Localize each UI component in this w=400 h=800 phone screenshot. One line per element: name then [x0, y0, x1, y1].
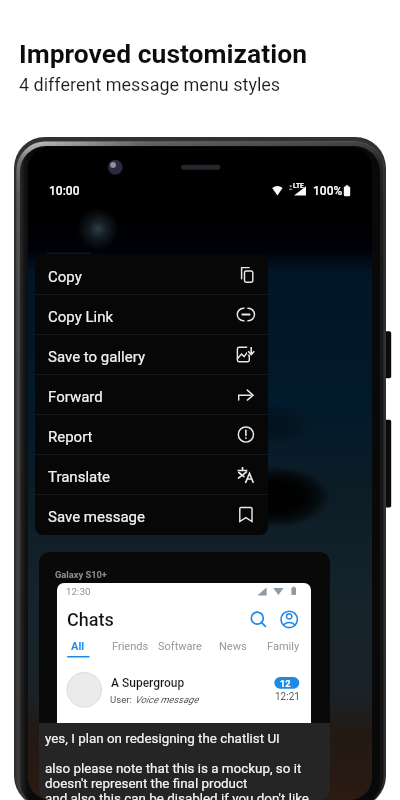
staticText: and also this can be disabled if you don… — [45, 791, 309, 800]
button[interactable]: Report — [35, 414, 268, 454]
button[interactable]: Save to gallery — [35, 334, 268, 374]
staticText: News — [219, 640, 247, 653]
staticText: 4 different message menu styles — [19, 74, 281, 95]
button[interactable]: Copy — [35, 254, 268, 294]
staticText: doesn't represent the final product — [45, 776, 248, 792]
staticText: Translate — [48, 468, 111, 486]
staticText: 12:30 — [66, 586, 91, 597]
staticText: Improved customization — [19, 38, 308, 69]
staticText: Software — [158, 640, 202, 653]
staticText: also please note that this is a mockup, … — [45, 761, 302, 777]
staticText: Family — [267, 640, 300, 653]
staticText: Save message — [48, 508, 145, 526]
staticText: Report — [48, 428, 93, 446]
staticText: 100% — [313, 184, 343, 198]
staticText: Friends — [112, 640, 149, 653]
staticText: All — [71, 640, 85, 653]
button[interactable]: Copy Link — [35, 294, 268, 334]
staticText: Save to gallery — [48, 348, 145, 366]
button[interactable]: Galaxy S10+ — [39, 552, 330, 800]
staticText: Chats — [67, 609, 114, 630]
staticText: 10:00 — [49, 184, 80, 198]
button[interactable]: Forward — [35, 374, 268, 414]
staticText: User: — [110, 694, 132, 705]
staticText: Copy Link — [48, 308, 114, 326]
staticText: Copy — [48, 268, 82, 286]
button[interactable]: Save message — [35, 494, 268, 534]
staticText: A Supergroup — [111, 676, 185, 690]
staticText: Galaxy S10+ — [55, 569, 107, 580]
staticText: 12 — [280, 678, 291, 689]
staticText: Forward — [48, 388, 103, 406]
button[interactable]: Translate — [35, 454, 268, 494]
staticText: yes, I plan on redesigning the chatlist … — [45, 731, 280, 747]
staticText: LTE — [293, 182, 304, 190]
staticText: Voice message — [135, 694, 199, 705]
staticText: 12:21 — [275, 691, 300, 703]
